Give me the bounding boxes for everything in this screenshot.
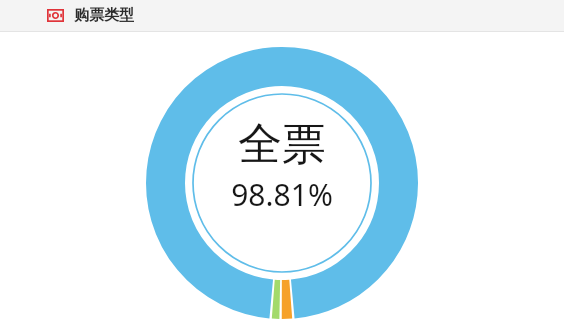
staticText: 购票类型 (74, 6, 134, 25)
staticText: 全票 (238, 117, 326, 172)
button[interactable]: Ticket type (0, 0, 564, 31)
staticText: 98.81% (231, 174, 333, 215)
other: Ticket type (47, 9, 64, 22)
